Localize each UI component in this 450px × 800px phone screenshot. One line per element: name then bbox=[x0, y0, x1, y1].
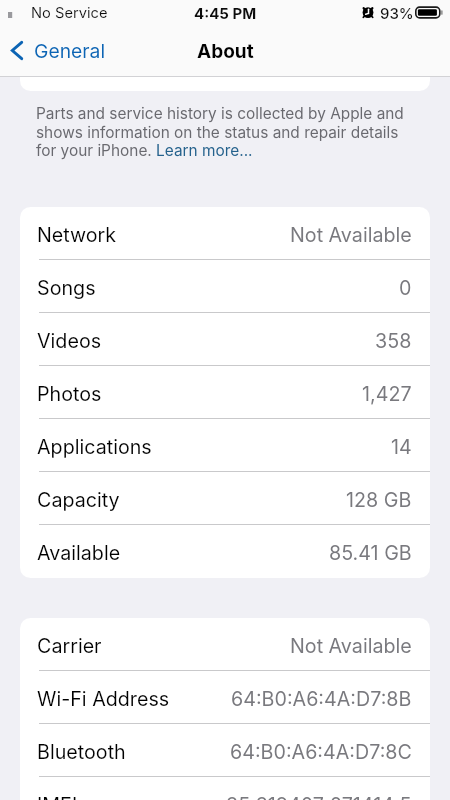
staticText: 93% bbox=[380, 4, 414, 22]
button[interactable]: Capacity bbox=[20, 472, 430, 525]
button[interactable]: IMEI bbox=[20, 777, 430, 800]
staticText: 4:45 PM bbox=[194, 4, 257, 22]
button[interactable]: Carrier bbox=[20, 618, 430, 671]
staticText: IMEI bbox=[37, 793, 78, 800]
staticText: Not Available bbox=[290, 223, 412, 247]
button[interactable]: Network bbox=[20, 207, 430, 260]
staticText: Network bbox=[37, 223, 117, 247]
staticText: 64:B0:A6:4A:D7:8C bbox=[230, 740, 412, 764]
staticText: Capacity bbox=[37, 488, 120, 512]
staticText: Available bbox=[37, 541, 121, 565]
staticText: 0 bbox=[399, 276, 412, 300]
staticText: Wi-Fi Address bbox=[37, 687, 170, 711]
button[interactable]: Available bbox=[20, 525, 430, 578]
staticText: 35 319407 671414 5 bbox=[226, 793, 412, 800]
staticText: Parts and service history is collected b… bbox=[36, 104, 411, 159]
other: Alarm set bbox=[362, 6, 375, 19]
other: Battery 93 percent bbox=[415, 6, 444, 19]
staticText: Applications bbox=[37, 435, 152, 459]
staticText: 14 bbox=[391, 435, 412, 459]
button[interactable]: General bbox=[0, 33, 118, 68]
staticText: 358 bbox=[375, 329, 412, 353]
staticText: 128 GB bbox=[346, 488, 412, 512]
staticText: About bbox=[197, 40, 254, 63]
staticText: General bbox=[34, 39, 106, 62]
button[interactable]: Bluetooth bbox=[20, 724, 430, 777]
staticText: Bluetooth bbox=[37, 740, 126, 764]
staticText: No Service bbox=[31, 4, 108, 22]
staticText: 64:B0:A6:4A:D7:8B bbox=[231, 687, 412, 711]
button[interactable]: Songs bbox=[20, 260, 430, 313]
button[interactable]: Applications bbox=[20, 419, 430, 472]
staticText: Songs bbox=[37, 276, 96, 300]
staticText: Not Available bbox=[290, 634, 412, 658]
staticText: Carrier bbox=[37, 634, 102, 658]
button[interactable]: Videos bbox=[20, 313, 430, 366]
staticText: 1,427 bbox=[362, 382, 412, 406]
button[interactable]: Photos bbox=[20, 366, 430, 419]
staticText: Videos bbox=[37, 329, 102, 353]
button[interactable]: Wi-Fi Address bbox=[20, 671, 430, 724]
staticText: 85.41 GB bbox=[329, 541, 412, 565]
staticText: Photos bbox=[37, 382, 102, 406]
